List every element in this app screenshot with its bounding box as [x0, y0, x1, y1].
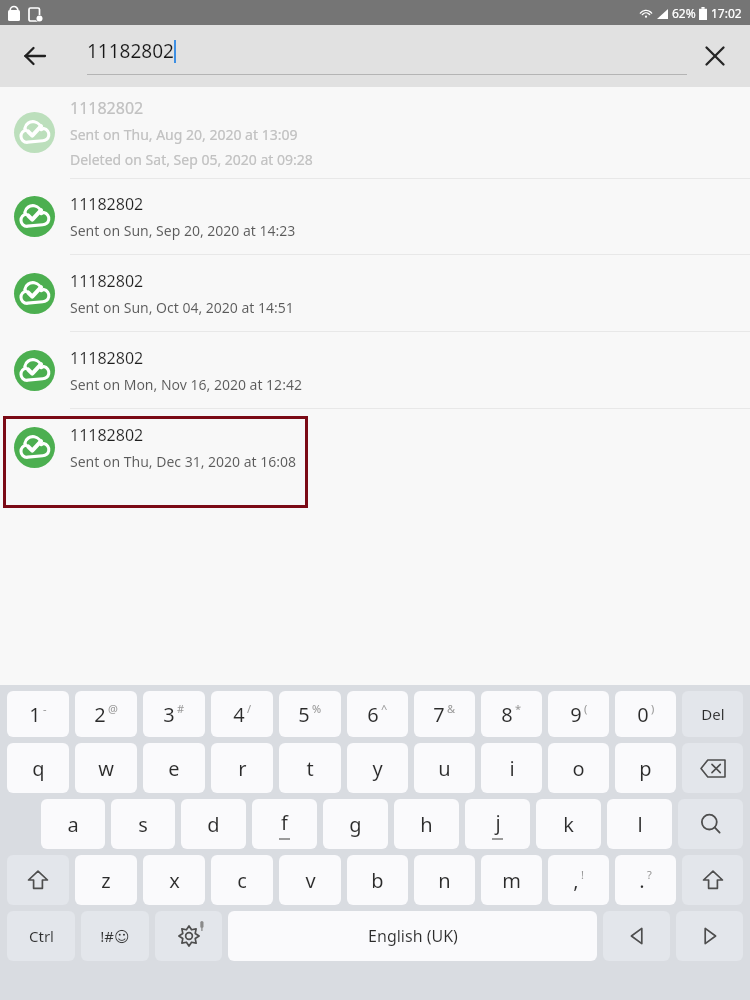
button[interactable]: Backspace	[682, 743, 743, 793]
staticText: %	[312, 701, 322, 716]
button[interactable]: !#☺	[81, 911, 149, 961]
staticText: 62%	[672, 5, 696, 21]
button[interactable]: 11182802	[0, 87, 750, 178]
staticText: 8	[501, 701, 513, 728]
button[interactable]: f	[252, 799, 317, 849]
button[interactable]: 8	[481, 691, 542, 737]
staticText: k	[563, 811, 574, 838]
button[interactable]: 3	[143, 691, 205, 737]
button[interactable]: 1	[7, 691, 69, 737]
staticText: 11182802	[87, 38, 174, 64]
staticText: e	[168, 755, 180, 782]
staticText: Ctrl	[29, 926, 54, 946]
staticText: Sent on Thu, Aug 20, 2020 at 13:09	[70, 125, 298, 144]
staticText: u	[438, 755, 451, 782]
button[interactable]: Back	[11, 32, 59, 80]
staticText: x	[169, 867, 180, 894]
button[interactable]: Shift	[7, 855, 69, 905]
button[interactable]: k	[536, 799, 601, 849]
staticText: ,	[573, 867, 579, 894]
button[interactable]: h	[394, 799, 459, 849]
staticText: n	[438, 867, 451, 894]
button[interactable]: Clear search	[693, 34, 737, 78]
button[interactable]: Move cursor right	[676, 911, 743, 961]
button[interactable]: 0	[615, 691, 676, 737]
staticText: 1	[29, 701, 41, 728]
staticText: p	[639, 755, 652, 782]
button[interactable]: q	[7, 743, 69, 793]
button[interactable]: d	[181, 799, 246, 849]
button[interactable]: v	[279, 855, 341, 905]
button[interactable]: 11182802	[0, 332, 750, 408]
button[interactable]: i	[481, 743, 542, 793]
button[interactable]: x	[143, 855, 205, 905]
staticText: @	[108, 701, 118, 716]
staticText: Sent on Thu, Dec 31, 2020 at 16:08	[70, 452, 297, 471]
button[interactable]: u	[414, 743, 475, 793]
staticText: 11182802	[70, 193, 144, 215]
button[interactable]: g	[323, 799, 388, 849]
button[interactable]: y	[347, 743, 408, 793]
staticText: 11182802	[70, 270, 144, 292]
button[interactable]: t	[279, 743, 341, 793]
button[interactable]: m	[481, 855, 542, 905]
button[interactable]: j	[465, 799, 530, 849]
button[interactable]: Move cursor left	[603, 911, 670, 961]
staticText: Sent on Mon, Nov 16, 2020 at 12:42	[70, 375, 302, 394]
staticText: g	[349, 811, 362, 838]
button[interactable]: 11182802	[0, 179, 750, 254]
button[interactable]: b	[347, 855, 408, 905]
button[interactable]: 5	[279, 691, 341, 737]
button[interactable]: ,	[548, 855, 609, 905]
staticText: &	[447, 701, 456, 716]
button[interactable]: Del	[682, 691, 743, 737]
button[interactable]: 11182802	[0, 255, 750, 331]
staticText: !	[581, 867, 584, 882]
button[interactable]: w	[75, 743, 137, 793]
button[interactable]: p	[615, 743, 676, 793]
button[interactable]: o	[548, 743, 609, 793]
button[interactable]: a	[41, 799, 105, 849]
staticText: q	[32, 755, 45, 782]
button[interactable]: 7	[414, 691, 475, 737]
button[interactable]: e	[143, 743, 205, 793]
staticText: 6	[367, 701, 379, 728]
button[interactable]: l	[607, 799, 672, 849]
button[interactable]: Keyboard settings	[155, 911, 222, 961]
staticText: f	[281, 809, 288, 836]
button[interactable]: z	[75, 855, 137, 905]
button[interactable]: 4	[211, 691, 273, 737]
staticText: j	[495, 809, 501, 836]
staticText: Deleted on Sat, Sep 05, 2020 at 09:28	[70, 150, 313, 169]
button[interactable]: s	[111, 799, 175, 849]
staticText: 9	[570, 701, 582, 728]
button[interactable]: English (UK)	[228, 911, 597, 961]
staticText: i	[509, 755, 515, 782]
button[interactable]: 11182802	[0, 409, 750, 485]
staticText: t	[306, 755, 314, 782]
staticText: 17:02	[711, 5, 742, 21]
button[interactable]: Shift	[682, 855, 743, 905]
staticText: 5	[298, 701, 310, 728]
staticText: d	[207, 811, 220, 838]
staticText: r	[238, 755, 247, 782]
staticText: (	[584, 701, 588, 716]
button[interactable]: .	[615, 855, 676, 905]
staticText: !#☺	[100, 926, 130, 946]
button[interactable]: Ctrl	[7, 911, 75, 961]
staticText: y	[372, 755, 383, 782]
staticText: 2	[94, 701, 106, 728]
staticText: *	[515, 701, 522, 716]
button[interactable]: 6	[347, 691, 408, 737]
button[interactable]: 9	[548, 691, 609, 737]
staticText: s	[138, 811, 148, 838]
button[interactable]: n	[414, 855, 475, 905]
button[interactable]: Search	[678, 799, 743, 849]
staticText: 3	[163, 701, 175, 728]
staticText: w	[98, 755, 114, 782]
button[interactable]: c	[211, 855, 273, 905]
button[interactable]: 2	[75, 691, 137, 737]
staticText: h	[420, 811, 433, 838]
button[interactable]: r	[211, 743, 273, 793]
staticText: 11182802	[70, 347, 144, 369]
